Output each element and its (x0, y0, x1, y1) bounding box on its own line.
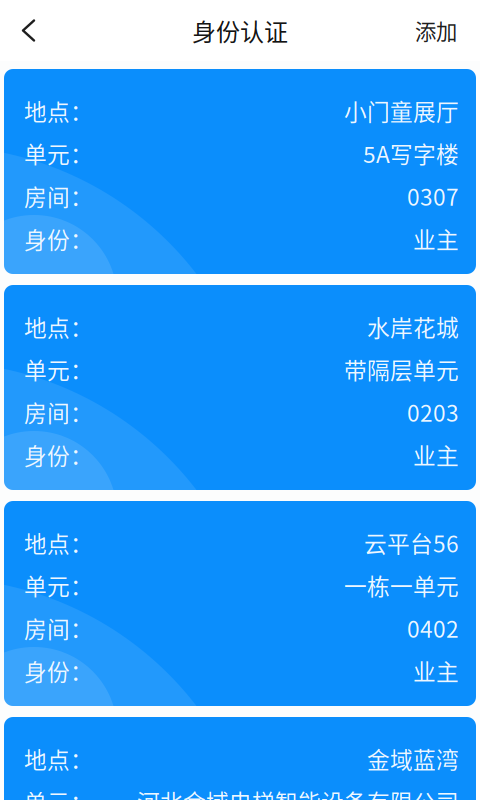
button[interactable]: 添加 (397, 0, 480, 61)
staticText: 身份： (24, 438, 93, 471)
staticText: 单元： (24, 785, 93, 800)
staticText: 添加 (415, 15, 457, 46)
staticText: 5A写字楼 (363, 137, 459, 170)
staticText: 地点： (24, 310, 93, 343)
staticText: 房间： (24, 611, 93, 644)
staticText: 云平台56 (364, 526, 459, 559)
button[interactable]: 地点： (4, 717, 476, 800)
staticText: 单元： (24, 137, 93, 170)
staticText: 业主 (413, 438, 459, 471)
staticText: 业主 (413, 222, 459, 255)
staticText: 身份： (24, 654, 93, 687)
staticText: 身份认证 (192, 13, 288, 48)
staticText: 身份： (24, 222, 93, 255)
staticText: 河北金域电梯智能设备有限公司 (137, 785, 459, 800)
staticText: 带隔层单元 (344, 353, 459, 386)
staticText: 房间： (24, 395, 93, 428)
button[interactable]: 地点： (4, 285, 476, 490)
staticText: 地点： (24, 526, 93, 559)
staticText: 业主 (413, 654, 459, 687)
staticText: 0203 (407, 395, 459, 428)
button[interactable]: 地点： (4, 69, 476, 274)
button[interactable]: 返回 (0, 0, 52, 61)
staticText: 一栋一单元 (344, 569, 459, 602)
staticText: 0307 (407, 179, 459, 212)
staticText: 房间： (24, 179, 93, 212)
staticText: 地点： (24, 742, 93, 775)
staticText: 金域蓝湾 (367, 742, 459, 775)
staticText: 小门童展厅 (344, 94, 459, 127)
staticText: 单元： (24, 569, 93, 602)
staticText: 水岸花城 (367, 310, 459, 343)
staticText: 0402 (407, 611, 459, 644)
staticText: 地点： (24, 94, 93, 127)
staticText: 单元： (24, 353, 93, 386)
button[interactable]: 地点： (4, 501, 476, 706)
